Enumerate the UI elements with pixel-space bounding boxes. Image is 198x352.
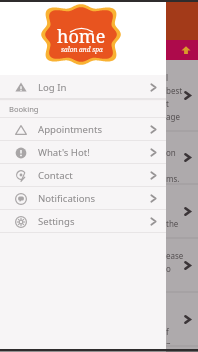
staticText: Appointments (38, 123, 102, 136)
staticText: o (166, 263, 171, 274)
staticText: What's Hot! (38, 146, 90, 159)
staticText: home (57, 24, 106, 49)
button[interactable]: the (0, 184, 198, 238)
button[interactable]: on (0, 131, 198, 184)
staticText: on (166, 147, 176, 158)
staticText: t (166, 98, 169, 109)
staticText: ease (166, 250, 184, 261)
staticText: age (166, 111, 180, 122)
button[interactable]: Log In (0, 75, 166, 99)
button[interactable]: l (0, 60, 198, 131)
staticText: Settings (38, 215, 75, 228)
staticText: Booking (9, 104, 39, 114)
button[interactable]: What's Hot! (0, 141, 166, 164)
button[interactable]: Notifications (0, 187, 166, 210)
other: Share (180, 44, 192, 56)
staticText: salon and spa (61, 45, 103, 54)
staticText: best (166, 85, 183, 96)
button[interactable]: f (0, 292, 198, 346)
staticText: the (166, 218, 179, 229)
staticText: Log In (38, 81, 67, 94)
staticText: f (166, 326, 169, 337)
button[interactable]: Settings (0, 210, 166, 233)
button[interactable]: Appointments (0, 118, 166, 141)
staticText: ms. (166, 173, 180, 182)
staticText: l (166, 72, 169, 83)
staticText: Notifications (38, 192, 96, 205)
button[interactable]: Contact (0, 164, 166, 187)
staticText: n (166, 339, 171, 344)
button[interactable]: ease (0, 238, 198, 292)
staticText: Contact (38, 169, 73, 182)
